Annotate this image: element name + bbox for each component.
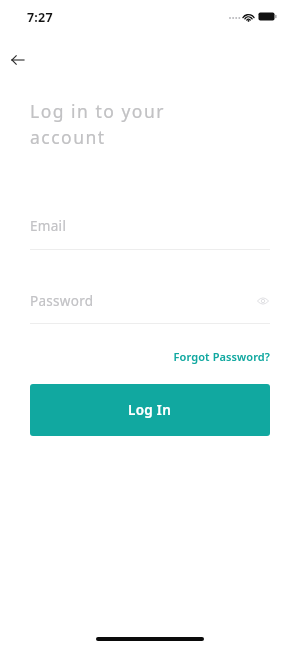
staticText: 7:27 [27, 9, 53, 26]
staticText: account [30, 125, 106, 149]
button[interactable]: Log In [30, 384, 270, 436]
button[interactable]: Email [30, 210, 270, 250]
button[interactable]: Forgot Password? [170, 345, 270, 367]
button[interactable]: Password [30, 285, 270, 324]
staticText: Log in to your [30, 99, 165, 123]
button[interactable]: Back [4, 47, 34, 75]
button[interactable]: Show password [252, 290, 274, 312]
staticText: Forgot Password? [173, 349, 270, 364]
staticText: Password [30, 292, 94, 310]
staticText: Email [30, 217, 67, 235]
staticText: Log In [128, 401, 172, 419]
